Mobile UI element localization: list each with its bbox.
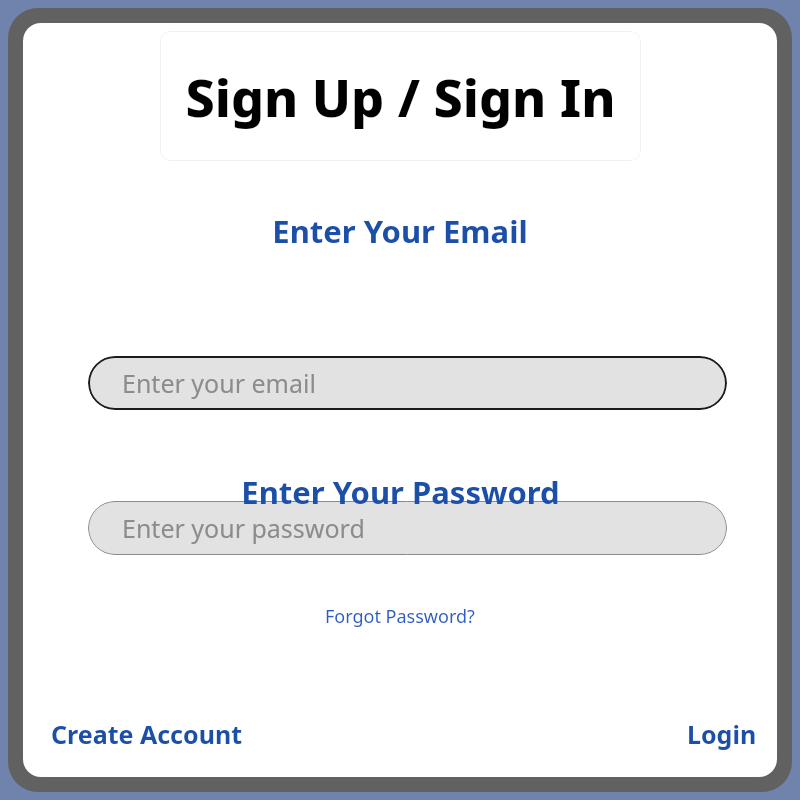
button[interactable]: Enter your password [88,501,727,555]
staticText: Create Account [51,717,242,751]
staticText: Sign Up / Sign In [185,61,616,132]
staticText: Login [687,717,757,751]
staticText: Enter your email [122,366,316,400]
staticText: Enter your password [122,511,365,545]
button[interactable]: Sign Up / Sign In [160,31,641,161]
button[interactable]: Create Account [47,713,246,755]
button[interactable]: Forgot Password? [319,601,481,632]
button[interactable]: Login [683,713,761,755]
staticText: Enter Your Email [272,210,528,252]
staticText: Forgot Password? [325,604,475,629]
button[interactable]: Enter your email [88,356,727,410]
staticText: Enter Your Password [241,471,560,513]
